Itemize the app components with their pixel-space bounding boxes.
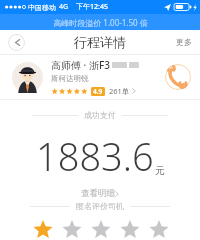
staticText: 查看明细 (81, 188, 115, 199)
button[interactable]: Rate 4 star (115, 219, 144, 240)
staticText: 更多 (176, 37, 192, 47)
button[interactable]: 高师傅 · 浙F3 (0, 55, 200, 99)
button[interactable]: 查看明细 (75, 186, 125, 201)
button[interactable]: Rate 5 star (144, 219, 173, 240)
staticText: 中国移动 (28, 3, 56, 12)
staticText: 斯柯达明锐 (51, 74, 89, 83)
staticText: 高师傅 · 浙F3 (51, 58, 110, 72)
button[interactable]: Back (8, 34, 25, 51)
staticText: 4.9 (93, 87, 103, 96)
staticText: 261单 (109, 86, 130, 96)
staticText: 高峰时段溢价 1.00-1.50 倍 (53, 17, 148, 28)
button[interactable]: Rate 2 star (57, 219, 86, 240)
staticText: 成功支付 (84, 110, 116, 120)
staticText: 行程详情 (74, 34, 126, 50)
button[interactable]: Rate 3 star (86, 219, 115, 240)
staticText: 1883.6 (36, 130, 154, 182)
staticText: 下午12:45 (76, 2, 108, 12)
button[interactable]: 更多 (168, 32, 200, 52)
button[interactable]: Rate 1 star (28, 219, 57, 240)
staticText: 匿名评价司机 (76, 201, 124, 211)
staticText: 元 (155, 164, 165, 177)
button[interactable]: Call driver (165, 64, 191, 90)
staticText: 4G (59, 2, 69, 12)
